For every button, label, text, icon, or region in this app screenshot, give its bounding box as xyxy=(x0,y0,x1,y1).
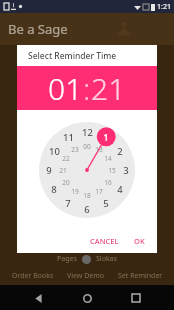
staticText: 22 xyxy=(62,154,70,163)
button[interactable]: Toggle xyxy=(82,255,91,264)
staticText: Set Reminder xyxy=(118,271,163,281)
staticText: 4 xyxy=(117,183,123,196)
staticText: 3 xyxy=(123,164,129,177)
staticText: Slokas xyxy=(96,254,117,264)
staticText: 20 xyxy=(62,178,70,187)
staticText: 23 xyxy=(71,145,79,154)
staticText: 2 xyxy=(117,145,123,158)
button[interactable]: 01 xyxy=(48,68,83,109)
staticText: Be a Sage xyxy=(8,20,68,38)
staticText: 9 xyxy=(46,164,52,177)
staticText: 1 xyxy=(103,131,109,144)
button[interactable]: View Demo xyxy=(65,271,106,281)
staticText: 1:21 xyxy=(157,2,171,12)
button[interactable]: 21 xyxy=(91,68,126,109)
staticText: 18 xyxy=(83,191,91,200)
staticText: 5 xyxy=(103,197,109,210)
button[interactable]: Back xyxy=(27,287,49,309)
staticText: 19 xyxy=(71,187,79,196)
button[interactable]: CANCEL xyxy=(85,231,124,251)
staticText: CANCEL xyxy=(90,236,119,246)
staticText: Pages xyxy=(57,254,77,264)
staticText: 21 xyxy=(59,166,67,175)
button[interactable]: Clock face xyxy=(39,122,135,218)
staticText: : xyxy=(83,68,91,109)
staticText: 10 xyxy=(49,145,60,158)
staticText: 15 xyxy=(108,166,116,175)
button[interactable]: Recents xyxy=(125,287,147,309)
button[interactable]: Set Reminder xyxy=(116,271,165,281)
staticText: Select Reminder Time xyxy=(28,50,117,62)
button[interactable]: Home xyxy=(76,287,98,309)
staticText: 17 xyxy=(95,187,103,196)
staticText: 16 xyxy=(104,178,112,187)
staticText: 14 xyxy=(104,154,112,163)
staticText: 12 xyxy=(82,126,93,139)
staticText: 21 xyxy=(91,68,126,109)
staticText: 8 xyxy=(51,183,57,196)
button[interactable]: Slokas xyxy=(91,254,122,264)
button[interactable]: Order Books xyxy=(10,271,56,281)
staticText: View Demo xyxy=(67,271,104,281)
staticText: 01 xyxy=(48,68,83,109)
staticText: 6 xyxy=(84,203,90,216)
staticText: 00 xyxy=(83,142,91,151)
staticText: 11 xyxy=(63,131,74,144)
button[interactable]: Pages xyxy=(52,254,82,264)
staticText: 13 xyxy=(95,145,103,154)
button[interactable]: OK xyxy=(129,231,150,251)
staticText: 7 xyxy=(65,197,71,210)
staticText: OK xyxy=(134,236,145,246)
staticText: Order Books xyxy=(12,271,54,281)
